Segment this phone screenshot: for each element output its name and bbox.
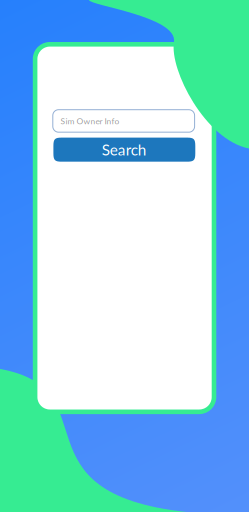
button[interactable]: Sim Owner Info <box>53 110 195 132</box>
staticText: Search <box>102 140 147 159</box>
staticText: Sim Owner Info <box>60 116 119 126</box>
button[interactable]: Search <box>53 138 195 162</box>
